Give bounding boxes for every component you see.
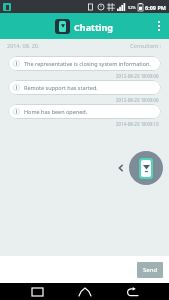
- staticText: 6:09 PM: [145, 4, 167, 11]
- staticText: 2012-08-20 18:09:06: [116, 97, 159, 103]
- staticText: Chatting: [74, 21, 114, 33]
- staticText: 2012-08-20 18:09:06: [116, 73, 159, 79]
- staticText: 2014-08-20 18:09:10: [116, 121, 159, 127]
- button[interactable]: The representative is closing system inf…: [8, 56, 161, 71]
- button[interactable]: Back: [121, 283, 143, 300]
- button[interactable]: Home: [74, 283, 96, 300]
- staticText: Home has been opened.: [24, 108, 88, 115]
- button[interactable]: Remote support has started.: [8, 80, 161, 95]
- staticText: The representative is closing system inf…: [24, 60, 151, 67]
- staticText: Send: [143, 266, 158, 274]
- button[interactable]: Video call: [129, 151, 163, 185]
- button[interactable]: Send: [137, 262, 163, 278]
- staticText: Consultant :: [130, 42, 162, 49]
- button[interactable]: Home has been opened.: [8, 104, 161, 119]
- button[interactable]: Recent apps: [26, 283, 48, 300]
- staticText: Remote support has started.: [24, 84, 98, 91]
- button[interactable]: More options: [155, 18, 163, 34]
- staticText: 52%: [128, 5, 136, 10]
- staticText: 2014. 08. 20.: [7, 42, 40, 49]
- button[interactable]: Collapse: [116, 163, 126, 173]
